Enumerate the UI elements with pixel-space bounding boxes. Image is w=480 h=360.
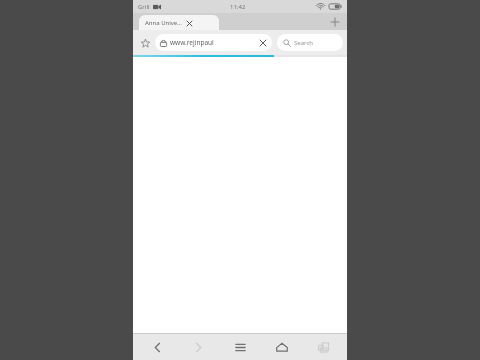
staticText: www.rejinpaul.co…: [170, 38, 214, 47]
staticText: Anna Unive…: [145, 19, 182, 27]
staticText: Grill: [138, 3, 150, 11]
staticText: 11:42: [230, 3, 246, 11]
button[interactable]: Menu: [222, 334, 258, 360]
button[interactable]: New tab: [328, 15, 342, 29]
button[interactable]: Tabs: [305, 334, 341, 360]
button[interactable]: Bookmark: [137, 35, 153, 51]
button[interactable]: Search: [277, 34, 343, 51]
button[interactable]: Close tab: [185, 19, 193, 27]
button[interactable]: Back: [139, 334, 175, 360]
button[interactable]: Stop loading: [258, 38, 267, 47]
button[interactable]: Forward: [180, 334, 216, 360]
staticText: Search: [294, 39, 313, 47]
button[interactable]: Home: [264, 334, 300, 360]
button[interactable]: Anna Unive…: [139, 15, 219, 30]
button[interactable]: www.rejinpaul.co…: [155, 34, 272, 51]
